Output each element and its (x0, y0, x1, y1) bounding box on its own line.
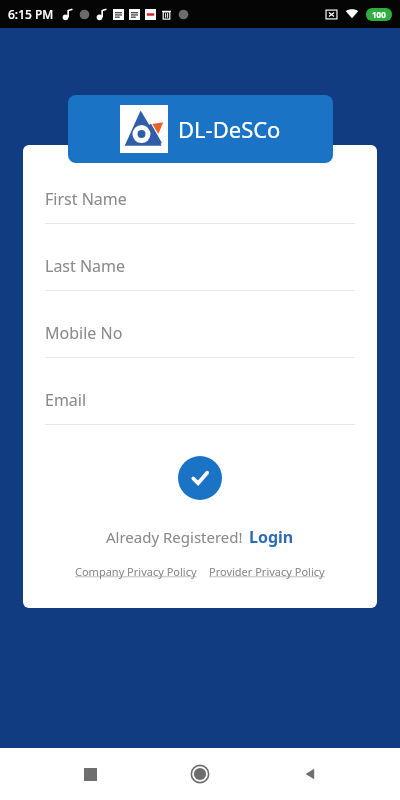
button[interactable]: Company Privacy Policy (73, 564, 199, 579)
button[interactable]: Login (249, 526, 294, 548)
staticText: Login (249, 526, 294, 548)
button[interactable]: Home (180, 754, 220, 794)
staticText: Already Registered! (106, 527, 243, 547)
button[interactable]: Email (45, 389, 355, 425)
button[interactable]: Recent apps (70, 754, 110, 794)
button[interactable]: Submit registration (178, 456, 222, 500)
staticText: Email (45, 389, 87, 411)
staticText: 6:15 PM (8, 6, 54, 22)
button[interactable]: Mobile No (45, 322, 355, 358)
button[interactable]: Back (290, 754, 330, 794)
staticText: Company Privacy Policy (75, 564, 197, 579)
button[interactable]: Provider Privacy Policy (207, 564, 327, 579)
staticText: 100 (372, 9, 386, 20)
staticText: Last Name (45, 255, 126, 277)
button[interactable]: Last Name (45, 255, 355, 291)
staticText: Mobile No (45, 322, 123, 344)
staticText: DL-DeSCo (178, 114, 281, 144)
staticText: First Name (45, 188, 127, 210)
staticText: Provider Privacy Policy (209, 564, 325, 579)
button[interactable]: First Name (45, 188, 355, 224)
